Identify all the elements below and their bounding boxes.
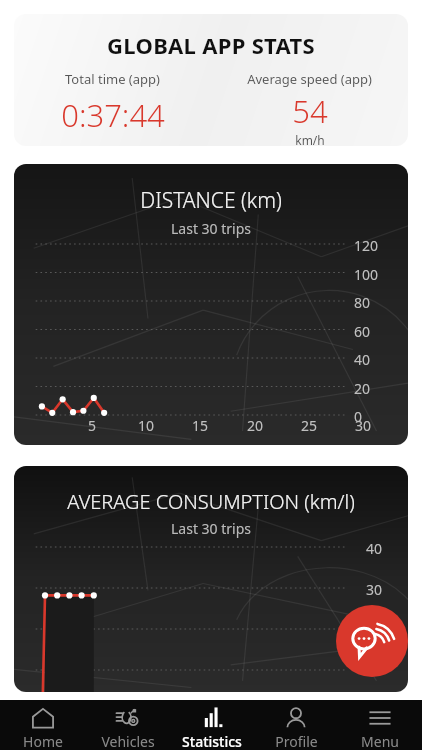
staticText: 30: [366, 580, 406, 599]
staticText: 25: [289, 416, 329, 435]
button[interactable]: Home: [0, 700, 85, 750]
staticText: 80: [354, 293, 394, 312]
staticText: 15: [180, 416, 220, 435]
staticText: Last 30 trips: [14, 219, 408, 238]
button[interactable]: Vehicles: [85, 700, 170, 750]
staticText: AVERAGE CONSUMPTION (km/l): [14, 488, 408, 515]
staticText: Home: [23, 732, 63, 750]
staticText: 40: [366, 539, 406, 558]
staticText: 0:37:44: [61, 94, 165, 136]
staticText: Menu: [361, 732, 399, 750]
button[interactable]: DISTANCE (km): [14, 164, 408, 445]
staticText: Average speed (app): [247, 70, 372, 88]
button[interactable]: Profile: [254, 700, 338, 750]
staticText: 54: [292, 90, 328, 132]
button[interactable]: Chat support: [336, 605, 408, 677]
staticText: Last 30 trips: [14, 519, 408, 538]
staticText: 5: [72, 416, 112, 435]
button[interactable]: Menu: [338, 700, 422, 750]
staticText: DISTANCE (km): [14, 186, 408, 215]
staticText: 40: [354, 350, 394, 369]
staticText: Vehicles: [101, 732, 155, 750]
staticText: 20: [235, 416, 275, 435]
staticText: 100: [354, 265, 394, 284]
staticText: 120: [354, 236, 394, 255]
button[interactable]: Statistics: [170, 700, 254, 750]
staticText: 20: [354, 379, 394, 398]
staticText: GLOBAL APP STATS: [14, 30, 408, 60]
staticText: 60: [354, 322, 394, 341]
staticText: Profile: [275, 732, 318, 750]
staticText: Statistics: [182, 732, 242, 750]
staticText: 10: [126, 416, 166, 435]
button[interactable]: AVERAGE CONSUMPTION (km/l): [14, 466, 408, 692]
staticText: km/h: [295, 132, 325, 146]
staticText: 30: [343, 416, 383, 435]
staticText: Total time (app): [65, 70, 160, 88]
staticText: 0: [354, 407, 394, 426]
button[interactable]: GLOBAL APP STATS: [14, 14, 408, 146]
